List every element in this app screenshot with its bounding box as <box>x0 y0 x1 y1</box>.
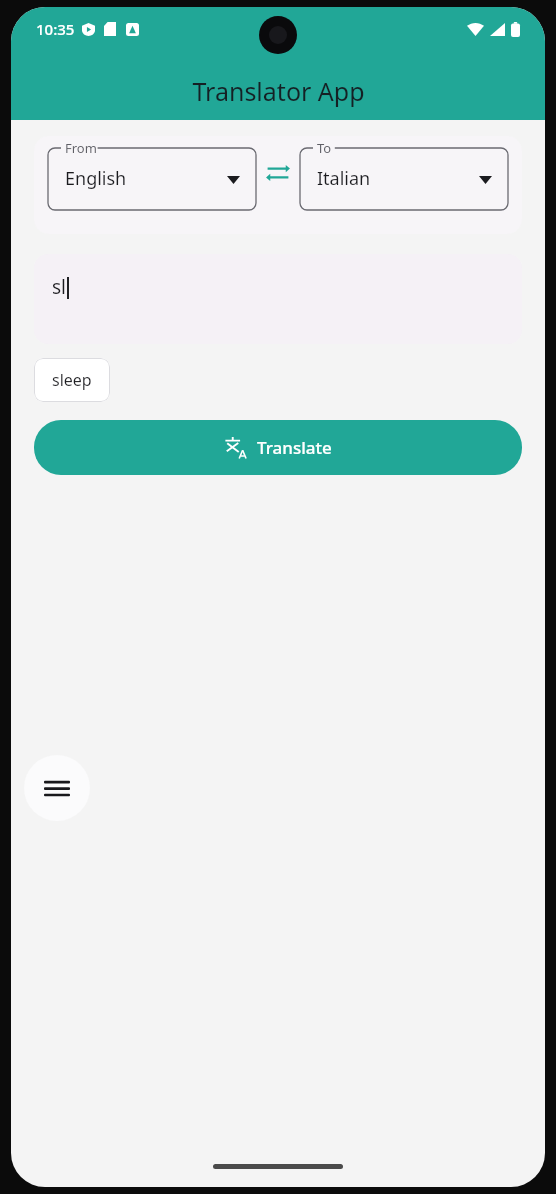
staticText: English <box>65 166 127 191</box>
staticText: Translator App <box>192 74 365 108</box>
staticText: 10:35 <box>36 19 75 39</box>
staticText: To <box>317 139 332 157</box>
staticText: Translate <box>257 436 332 459</box>
staticText: sl <box>52 274 67 300</box>
staticText: sleep <box>52 369 92 391</box>
button[interactable]: Swap languages <box>256 151 300 195</box>
staticText: From <box>65 139 97 157</box>
button[interactable]: From <box>48 136 256 210</box>
staticText: Italian <box>317 166 371 191</box>
button[interactable]: Open menu <box>24 755 90 821</box>
button[interactable]: sl <box>34 254 522 344</box>
button[interactable]: Translate <box>34 420 522 475</box>
button[interactable]: sleep <box>34 358 110 402</box>
button[interactable]: To <box>300 136 508 210</box>
